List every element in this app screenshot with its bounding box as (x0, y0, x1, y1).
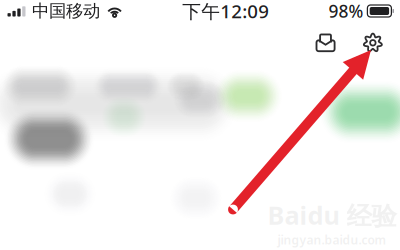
button[interactable]: Settings (359, 27, 386, 59)
staticText: jingyan.baidu.com (277, 232, 386, 248)
staticText: 下午12:09 (182, 0, 269, 23)
staticText: 98% (328, 0, 363, 22)
staticText: Baidu 经验 (267, 198, 396, 232)
staticText: 中国移动 (32, 0, 100, 22)
button[interactable]: Mail (292, 27, 359, 59)
